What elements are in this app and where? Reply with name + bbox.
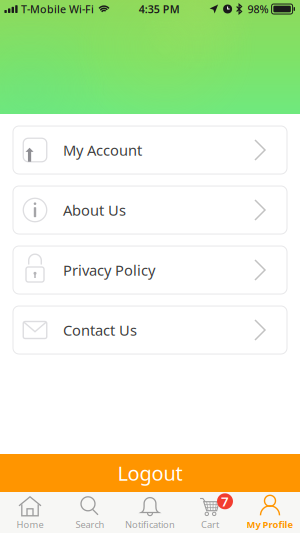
button[interactable]: Privacy Policy — [13, 246, 287, 294]
staticText: Privacy Policy — [63, 260, 155, 280]
staticText: T-Mobile Wi-Fi — [21, 2, 94, 16]
button[interactable]: Contact Us — [13, 306, 287, 354]
button[interactable]: Search — [60, 491, 120, 533]
staticText: About Us — [63, 200, 126, 220]
button[interactable]: My Profile — [240, 491, 300, 533]
button[interactable]: Logout — [0, 454, 300, 492]
staticText: 7 — [221, 492, 229, 510]
staticText: Cart — [201, 518, 219, 531]
staticText: 4:35 PM — [139, 2, 180, 16]
button[interactable]: Home — [0, 491, 60, 533]
button[interactable]: About Us — [13, 186, 287, 234]
staticText: Contact Us — [63, 320, 137, 340]
button[interactable]: Notification — [120, 491, 180, 533]
button[interactable]: My Account — [13, 126, 287, 174]
staticText: Notification — [125, 518, 175, 531]
staticText: Search — [75, 518, 104, 531]
staticText: My Profile — [246, 518, 293, 531]
staticText: My Account — [63, 140, 142, 160]
button[interactable]: 7 — [180, 491, 240, 533]
staticText: Logout — [117, 460, 182, 486]
staticText: 98% — [248, 2, 269, 16]
staticText: Home — [16, 518, 43, 531]
